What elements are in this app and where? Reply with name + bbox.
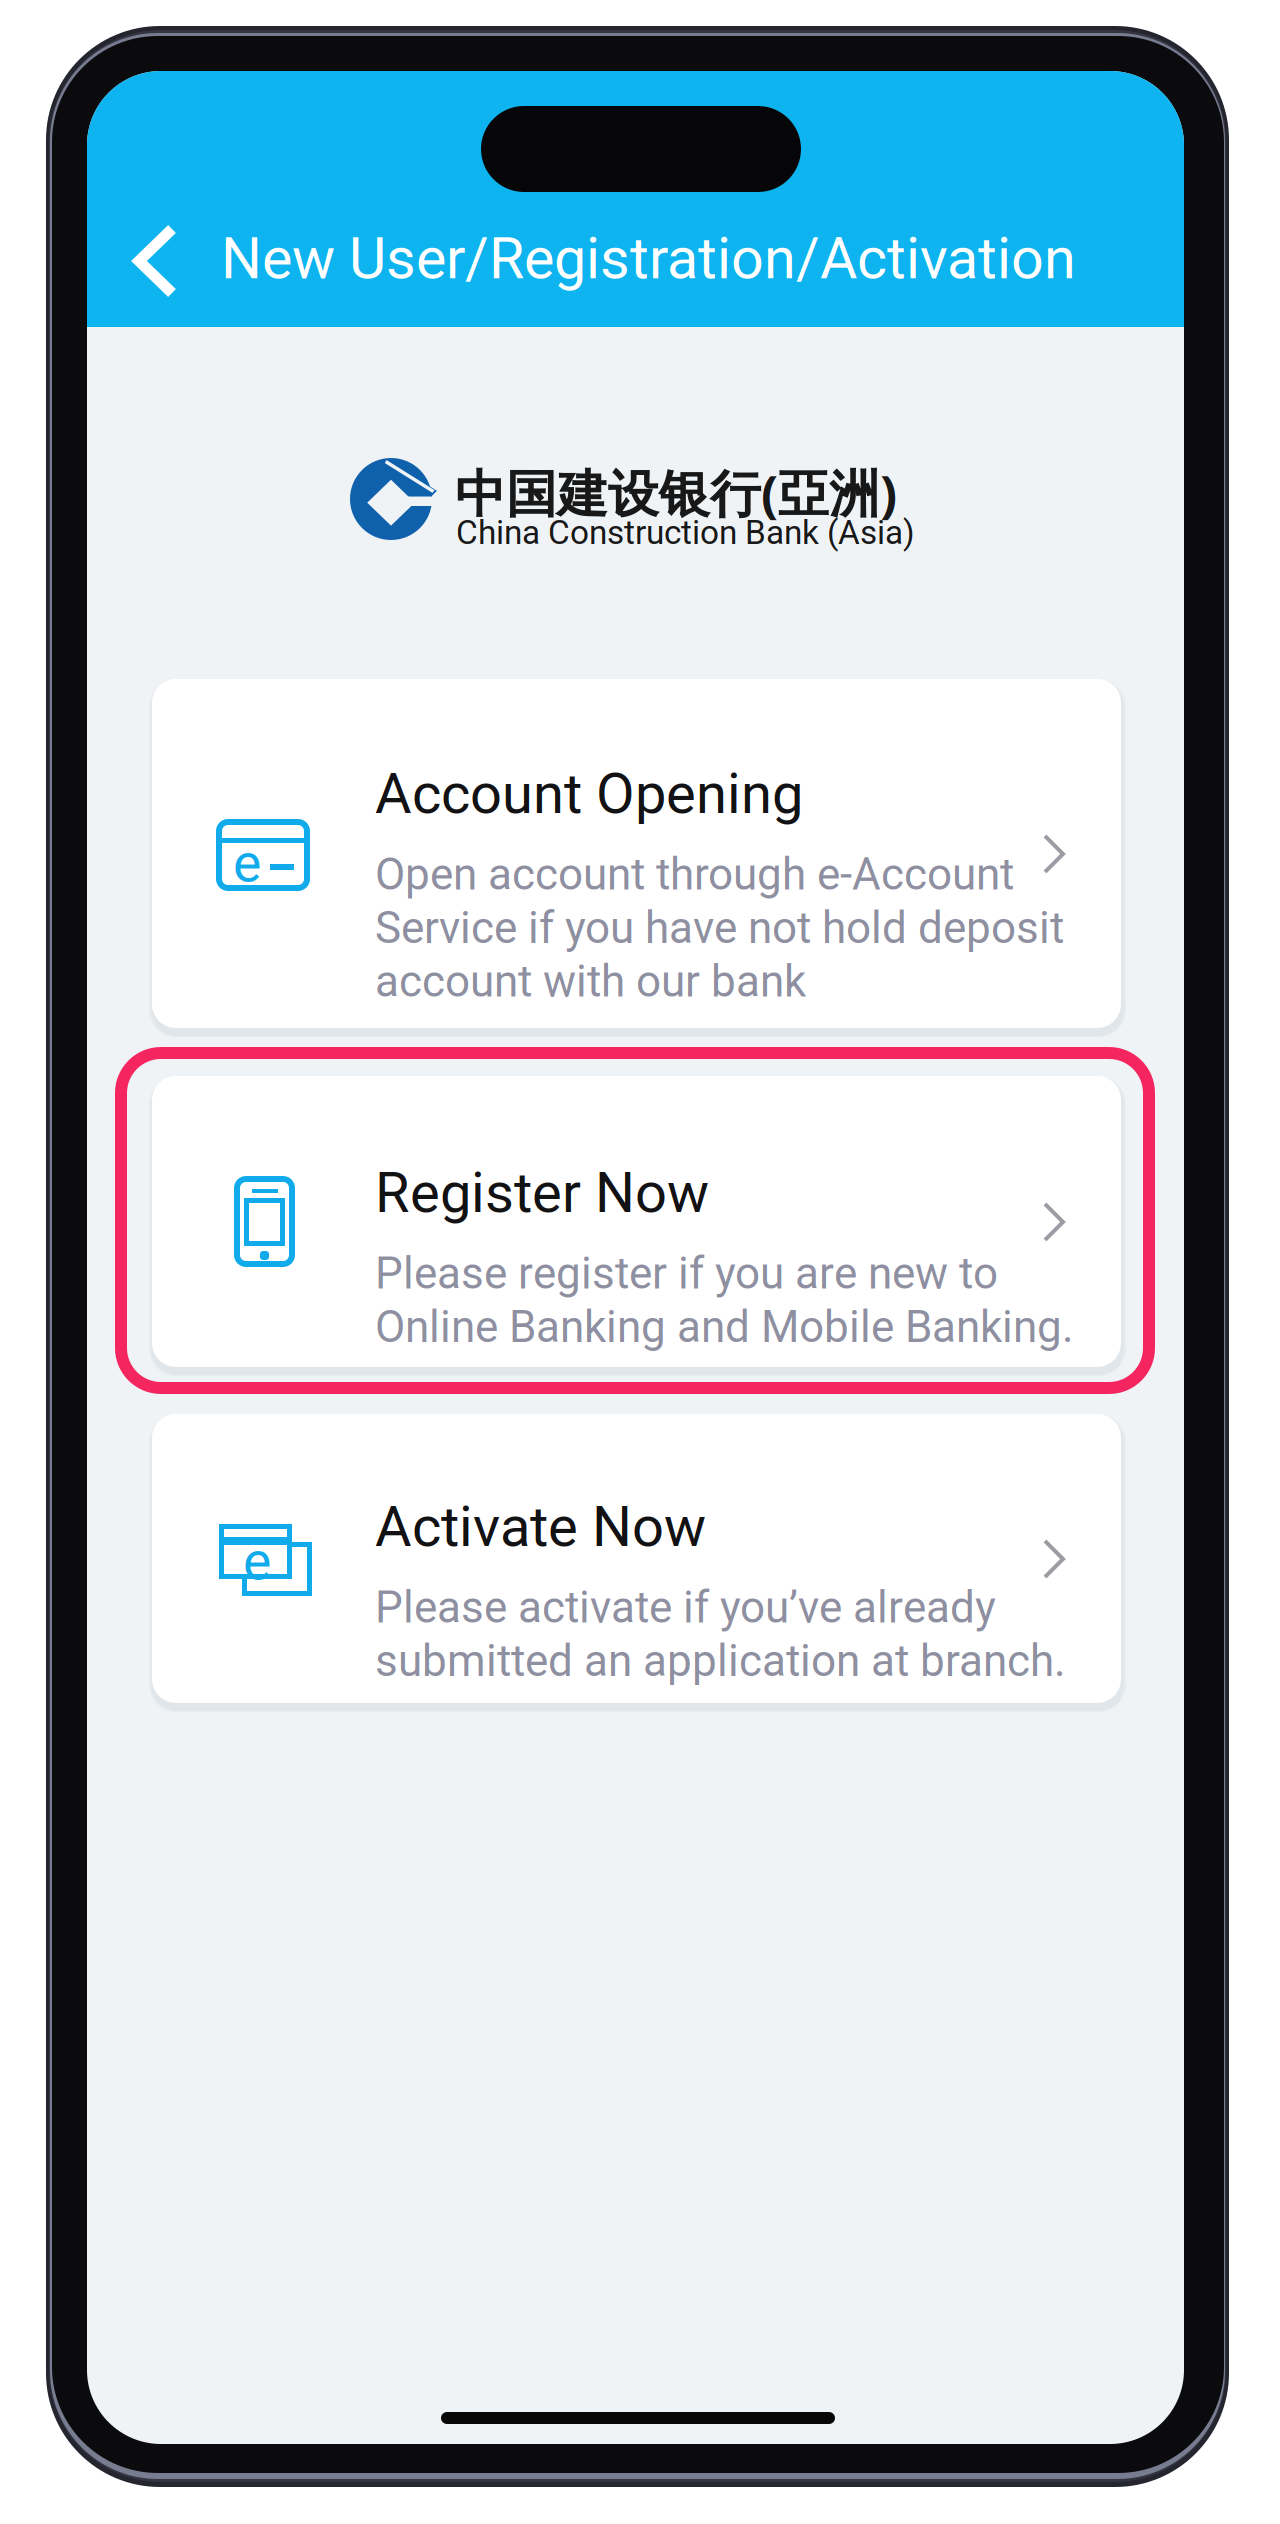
staticText: New User/Registration/Activation <box>221 225 1076 292</box>
staticText: Please register if you are new to <box>375 1248 998 1299</box>
button[interactable]: Register Now <box>152 1076 1121 1367</box>
staticText: China Construction Bank (Asia) <box>456 513 915 552</box>
staticText: Online Banking and Mobile Banking. <box>375 1301 1074 1353</box>
button[interactable]: e <box>152 679 1121 1028</box>
staticText: Open account through e-Account <box>375 849 1014 900</box>
button[interactable]: Back <box>113 209 198 313</box>
staticText: account with our bank <box>375 956 806 1007</box>
staticText: Service if you have not hold deposit <box>375 902 1064 954</box>
staticText: 中国建设银行(亞洲) <box>455 459 897 526</box>
staticText: Account Opening <box>375 761 803 827</box>
staticText: e <box>233 832 261 894</box>
staticText: Register Now <box>375 1160 709 1226</box>
staticText: e <box>243 1530 271 1592</box>
staticText: submitted an application at branch. <box>375 1635 1066 1687</box>
button[interactable]: e <box>152 1414 1121 1703</box>
staticText: Activate Now <box>375 1494 706 1560</box>
staticText: Please activate if you’ve already <box>375 1582 996 1633</box>
